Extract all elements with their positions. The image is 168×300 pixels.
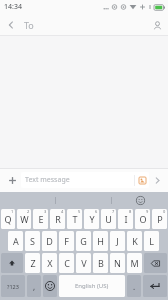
- staticText: Z: [30, 257, 36, 269]
- staticText: G: [80, 235, 87, 247]
- staticText: O: [139, 213, 147, 225]
- button[interactable]: Contacts: [146, 14, 168, 36]
- button[interactable]: X: [42, 253, 57, 273]
- staticText: ?123: [7, 283, 19, 290]
- staticText: P: [157, 213, 163, 225]
- staticText: 0: [163, 209, 166, 214]
- button[interactable]: Text message: [21, 172, 149, 188]
- button[interactable]: Emoji keyboard: [43, 275, 57, 297]
- button[interactable]: C: [59, 253, 74, 273]
- button[interactable]: 4: [50, 209, 65, 229]
- staticText: M: [130, 257, 139, 269]
- button[interactable]: K: [127, 231, 142, 251]
- staticText: W: [20, 213, 29, 225]
- staticText: H: [97, 235, 104, 247]
- button[interactable]: A: [8, 231, 23, 251]
- button[interactable]: 5: [67, 209, 82, 229]
- staticText: C: [64, 257, 70, 269]
- button[interactable]: ?123: [1, 275, 25, 297]
- staticText: I: [124, 213, 128, 225]
- button[interactable]: Enter: [143, 275, 167, 297]
- staticText: 7: [112, 209, 115, 214]
- button[interactable]: M: [127, 253, 142, 273]
- button[interactable]: Shift: [1, 253, 23, 273]
- button[interactable]: 2: [17, 209, 31, 229]
- staticText: L: [149, 235, 154, 247]
- staticText: D: [46, 235, 53, 247]
- staticText: X: [47, 257, 53, 269]
- button[interactable]: B: [93, 253, 108, 273]
- staticText: ,: [33, 281, 36, 292]
- button[interactable]: 6: [84, 209, 99, 229]
- button[interactable]: ,: [27, 275, 41, 297]
- button[interactable]: H: [93, 231, 108, 251]
- staticText: A: [13, 235, 19, 247]
- staticText: K: [132, 235, 138, 247]
- staticText: To: [24, 19, 34, 31]
- staticText: N: [114, 257, 121, 269]
- staticText: English (US): [75, 282, 109, 290]
- staticText: 4: [61, 209, 64, 214]
- button[interactable]: .: [127, 275, 141, 297]
- staticText: U: [105, 213, 112, 225]
- staticText: E: [38, 213, 44, 225]
- button[interactable]: Sticker: [135, 172, 149, 188]
- button[interactable]: 3: [33, 209, 48, 229]
- staticText: .: [133, 281, 136, 292]
- staticText: V: [81, 257, 87, 269]
- staticText: J: [116, 235, 119, 247]
- button[interactable]: 8: [118, 209, 133, 229]
- staticText: 14:34: [4, 2, 22, 12]
- button[interactable]: D: [42, 231, 57, 251]
- staticText: Q: [4, 213, 12, 225]
- staticText: B: [98, 257, 104, 269]
- staticText: 9: [146, 209, 149, 214]
- button[interactable]: Send: [149, 172, 165, 188]
- staticText: 8: [129, 209, 132, 214]
- button[interactable]: 7: [101, 209, 116, 229]
- staticText: 6: [95, 209, 98, 214]
- staticText: Y: [89, 213, 95, 225]
- button[interactable]: 0: [152, 209, 167, 229]
- button[interactable]: N: [110, 253, 125, 273]
- staticText: R: [55, 213, 61, 225]
- button[interactable]: 9: [135, 209, 150, 229]
- staticText: S: [30, 235, 35, 247]
- button[interactable]: V: [76, 253, 91, 273]
- staticText: F: [64, 235, 69, 247]
- button[interactable]: Emoji: [112, 192, 168, 208]
- button[interactable]: G: [76, 231, 91, 251]
- staticText: 3: [44, 209, 47, 214]
- button[interactable]: L: [144, 231, 159, 251]
- button[interactable]: 1: [1, 209, 15, 229]
- staticText: 5: [78, 209, 81, 214]
- button[interactable]: F: [59, 231, 74, 251]
- button[interactable]: J: [110, 231, 125, 251]
- button[interactable]: S: [25, 231, 40, 251]
- button[interactable]: English (US): [59, 275, 125, 297]
- staticText: 1: [11, 209, 14, 214]
- staticText: T: [72, 213, 78, 225]
- button[interactable]: Back: [0, 14, 22, 36]
- button[interactable]: Attach: [3, 171, 21, 189]
- staticText: 2: [27, 209, 30, 214]
- button[interactable]: Backspace: [144, 253, 167, 273]
- staticText: Text message: [25, 175, 134, 185]
- button[interactable]: Z: [25, 253, 40, 273]
